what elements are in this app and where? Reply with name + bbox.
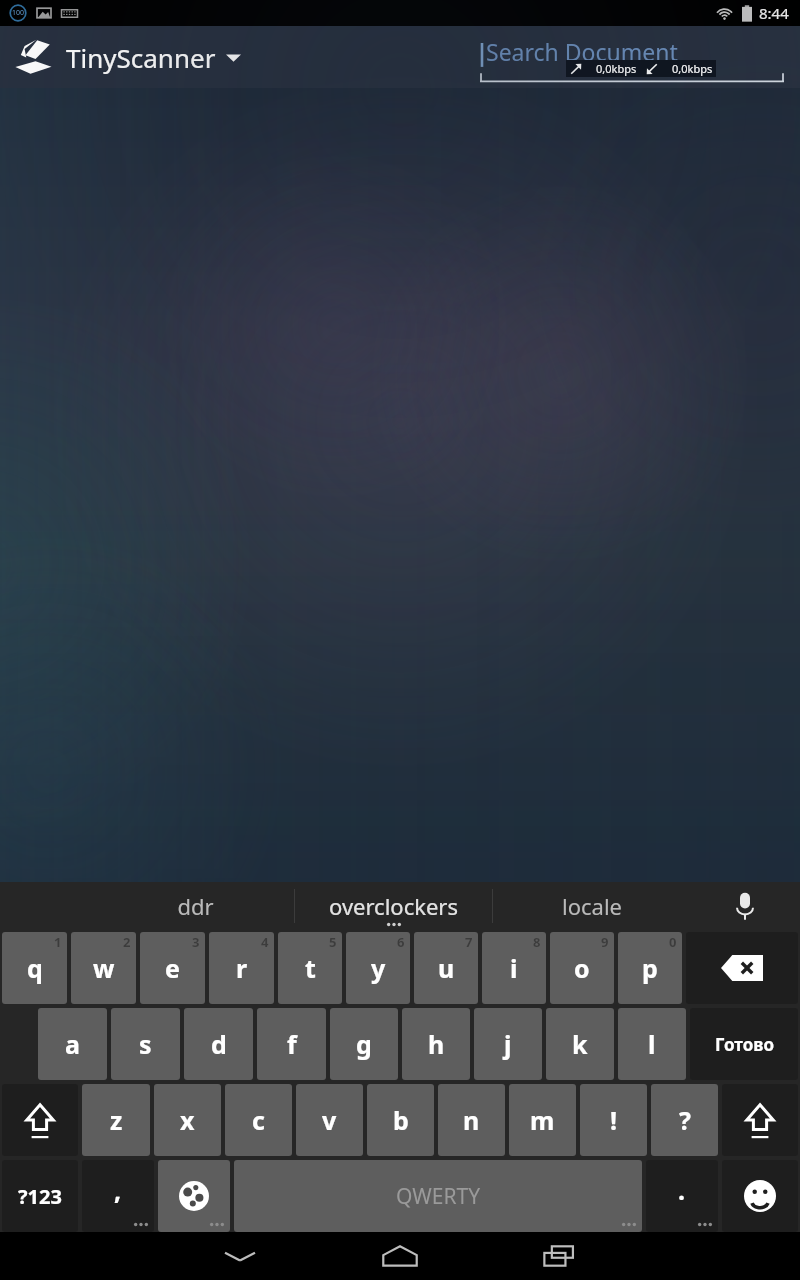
staticText: 1 [54, 933, 62, 951]
staticText: 100 [12, 8, 25, 18]
staticText: w [93, 951, 115, 985]
staticText: s [139, 1027, 152, 1061]
button[interactable]: e [140, 932, 205, 1004]
staticText: a [65, 1027, 80, 1061]
staticText: QWERTY [396, 1182, 481, 1211]
button[interactable]: p [618, 932, 682, 1004]
staticText: t [305, 951, 316, 985]
button[interactable]: Hide keyboard [160, 1232, 320, 1280]
button[interactable]: k [546, 1008, 614, 1080]
button[interactable]: Shift [2, 1084, 78, 1156]
button[interactable]: i [482, 932, 546, 1004]
staticText: h [428, 1027, 445, 1061]
staticText: 8 [533, 933, 541, 951]
staticText: q [27, 951, 43, 985]
staticText: , [114, 1173, 122, 1207]
button[interactable]: Shift [722, 1084, 798, 1156]
staticText: Готово [715, 1033, 774, 1056]
staticText: r [236, 951, 248, 985]
staticText: 5 [329, 933, 337, 951]
button[interactable]: j [474, 1008, 542, 1080]
staticText: 3 [192, 933, 200, 951]
staticText: n [463, 1103, 480, 1137]
staticText: i [510, 951, 518, 985]
button[interactable]: m [509, 1084, 576, 1156]
staticText: v [322, 1103, 337, 1137]
staticText: j [504, 1027, 512, 1061]
button[interactable]: Home [320, 1232, 480, 1280]
staticText: l [648, 1027, 656, 1061]
staticText: d [211, 1027, 227, 1061]
staticText: 8:44 [759, 3, 789, 23]
staticText: locale [562, 891, 622, 921]
button[interactable]: QWERTY [234, 1160, 642, 1232]
staticText: y [371, 951, 386, 985]
button[interactable]: b [367, 1084, 434, 1156]
staticText: o [574, 951, 590, 985]
button[interactable]: w [71, 932, 136, 1004]
staticText: u [438, 951, 455, 985]
staticText: e [165, 951, 180, 985]
button[interactable]: . [646, 1160, 718, 1232]
staticText: f [287, 1027, 297, 1061]
staticText: b [393, 1103, 409, 1137]
staticText: 0 [669, 933, 677, 951]
button[interactable]: t [278, 932, 342, 1004]
button[interactable]: Voice input [690, 882, 800, 929]
staticText: m [530, 1103, 555, 1137]
staticText: ? [679, 1103, 691, 1137]
button[interactable]: Готово [690, 1008, 798, 1080]
button[interactable]: s [111, 1008, 180, 1080]
button[interactable]: ?123 [2, 1160, 78, 1232]
button[interactable]: f [257, 1008, 326, 1080]
button[interactable]: r [209, 932, 274, 1004]
button[interactable]: d [184, 1008, 253, 1080]
staticText: TinyScanner [66, 40, 216, 75]
staticText: k [572, 1027, 588, 1061]
button[interactable]: c [225, 1084, 292, 1156]
button[interactable]: overclockers [295, 882, 492, 929]
button[interactable]: Backspace [686, 932, 798, 1004]
staticText: overclockers [329, 891, 458, 921]
button[interactable]: Recent apps [480, 1232, 640, 1280]
button[interactable]: ddr [97, 882, 294, 929]
button[interactable]: x [154, 1084, 221, 1156]
staticText: . [678, 1173, 686, 1207]
button[interactable]: l [618, 1008, 686, 1080]
staticText: c [252, 1103, 265, 1137]
staticText: Search Document [486, 36, 678, 67]
button[interactable]: h [402, 1008, 470, 1080]
staticText: ?123 [18, 1183, 62, 1210]
button[interactable]: o [550, 932, 614, 1004]
staticText: ddr [177, 891, 214, 921]
button[interactable]: ! [580, 1084, 647, 1156]
staticText: ! [610, 1103, 618, 1137]
staticText: x [180, 1103, 195, 1137]
staticText: 0,0kbps [672, 61, 713, 76]
staticText: 0,0kbps [596, 61, 637, 76]
button[interactable]: ? [651, 1084, 718, 1156]
staticText: 6 [397, 933, 405, 951]
staticText: 2 [123, 933, 131, 951]
staticText: 7 [465, 933, 473, 951]
staticText: z [110, 1103, 123, 1137]
staticText: p [642, 951, 658, 985]
button[interactable]: , [82, 1160, 154, 1232]
button[interactable]: q [2, 932, 67, 1004]
staticText: 4 [261, 933, 269, 951]
button[interactable]: locale [493, 882, 690, 929]
button[interactable]: TinyScanner [0, 30, 251, 84]
button[interactable]: v [296, 1084, 363, 1156]
staticText: g [356, 1027, 372, 1061]
staticText: 9 [601, 933, 609, 951]
button[interactable]: g [330, 1008, 398, 1080]
button[interactable]: Search Document [480, 40, 784, 88]
button[interactable]: y [346, 932, 410, 1004]
button[interactable]: Change language [158, 1160, 230, 1232]
button[interactable]: n [438, 1084, 505, 1156]
button[interactable]: Emoji [722, 1160, 798, 1232]
button[interactable]: z [82, 1084, 150, 1156]
button[interactable]: a [38, 1008, 107, 1080]
button[interactable]: u [414, 932, 478, 1004]
